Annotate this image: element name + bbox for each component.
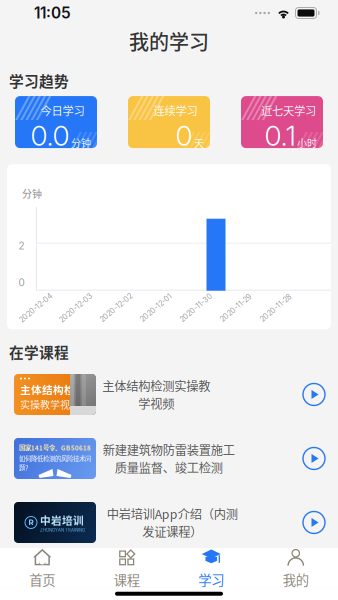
button[interactable]: 课程 (84, 547, 169, 587)
button[interactable]: 我的 (253, 547, 338, 587)
staticText: R (28, 518, 33, 527)
staticText: 近七天学习 (261, 102, 316, 118)
staticText: 2020-12-03 (55, 303, 96, 312)
staticText: 学习趋势 (9, 70, 69, 91)
staticText: 2 (18, 240, 24, 252)
staticText: 0.0 (30, 118, 69, 152)
staticText: 今日学习 (40, 102, 84, 118)
staticText: 天 (194, 135, 204, 150)
staticText: 0.1 (264, 118, 295, 152)
staticText: ZHONGYAN TRAINING (40, 528, 85, 533)
button[interactable]: 首页 (0, 547, 84, 587)
staticText: 新建建筑物防雷装置施工质量监督、竣工检测 (102, 441, 234, 476)
staticText: 实操教学视频 (20, 397, 80, 411)
staticText: 0 (18, 277, 24, 289)
staticText: 2020-11-28 (256, 303, 295, 312)
staticText: 2020-12-02 (96, 303, 136, 312)
button[interactable]: R (0, 490, 338, 554)
staticText: 首页 (29, 570, 55, 589)
staticText: 2020-11-29 (216, 303, 255, 312)
staticText: 2020-12-04 (15, 303, 56, 312)
staticText: 2020-12-01 (136, 303, 175, 312)
staticText: 分钟 (71, 135, 91, 150)
staticText: 中岩培训 (40, 512, 84, 528)
staticText: 在学课程 (9, 341, 69, 362)
staticText: 2020-11-30 (176, 303, 216, 312)
staticText: 连续学习 (153, 102, 197, 118)
staticText: 分钟 (22, 186, 42, 201)
button[interactable]: 主体结构检测 (0, 362, 338, 426)
staticText: 小时 (297, 135, 317, 150)
staticText: 我的 (283, 570, 309, 589)
staticText: 如何降低检测的风险技术问题？ (19, 454, 91, 472)
staticText: 国家141号令、GB 50618 (19, 443, 91, 452)
staticText: 学习 (198, 570, 224, 589)
staticText: 我的学习 (129, 26, 209, 55)
staticText: 11:05 (34, 4, 71, 22)
staticText: 0 (175, 118, 192, 152)
staticText: 主体结构检测实操教学视频 (102, 377, 210, 412)
staticText: 主体结构检测 (20, 381, 86, 397)
staticText: 中岩培训App介绍（内测发证课程） (106, 505, 237, 540)
button[interactable]: 国家141号令、GB 50618 (0, 426, 338, 490)
staticText: 课程 (114, 570, 140, 589)
button[interactable]: 学习 (169, 547, 253, 587)
